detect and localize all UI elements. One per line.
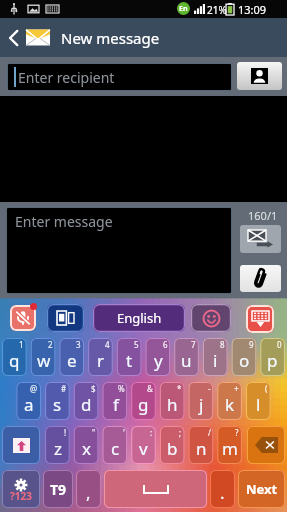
staticText: New message bbox=[61, 28, 160, 48]
button[interactable]: . bbox=[210, 470, 235, 508]
staticText: n bbox=[196, 437, 207, 460]
staticText: & bbox=[147, 383, 153, 394]
staticText: 6 bbox=[163, 339, 168, 350]
staticText: 7 bbox=[191, 339, 196, 350]
button[interactable]: i bbox=[203, 338, 228, 376]
staticText: c bbox=[111, 437, 120, 460]
staticText: - bbox=[208, 383, 211, 394]
staticText: " bbox=[92, 427, 96, 438]
button[interactable]: k bbox=[217, 382, 242, 420]
staticText: j bbox=[199, 393, 204, 416]
button[interactable]: x bbox=[74, 426, 99, 464]
button[interactable]: Space bbox=[104, 470, 207, 508]
button[interactable]: r bbox=[88, 338, 113, 376]
button[interactable]: q bbox=[2, 338, 27, 376]
staticText: # bbox=[61, 383, 67, 394]
button[interactable]: a bbox=[16, 382, 41, 420]
staticText: Next bbox=[246, 480, 278, 498]
button[interactable]: Send bbox=[240, 225, 281, 253]
staticText: o bbox=[239, 349, 250, 372]
staticText: En bbox=[179, 4, 188, 14]
staticText: a bbox=[24, 393, 34, 416]
button[interactable]: y bbox=[146, 338, 171, 376]
staticText: % bbox=[118, 383, 125, 394]
staticText: d bbox=[81, 393, 92, 416]
button[interactable]: T9 bbox=[43, 470, 73, 508]
button[interactable]: j bbox=[189, 382, 214, 420]
button[interactable]: o bbox=[232, 338, 257, 376]
button[interactable]: l bbox=[246, 382, 271, 420]
button[interactable]: Back bbox=[0, 18, 26, 57]
staticText: g bbox=[138, 393, 149, 416]
staticText: , bbox=[86, 481, 91, 504]
staticText: ?123 bbox=[10, 489, 32, 503]
button[interactable]: Emoji bbox=[191, 304, 231, 332]
staticText: 5 bbox=[134, 339, 139, 350]
button[interactable]: z bbox=[45, 426, 70, 464]
staticText: T9 bbox=[50, 480, 67, 499]
staticText: y bbox=[154, 349, 163, 372]
button[interactable]: , bbox=[76, 470, 101, 508]
staticText: 21% bbox=[207, 3, 227, 17]
staticText: 3 bbox=[76, 339, 81, 350]
staticText: q bbox=[9, 349, 20, 372]
button[interactable]: u bbox=[174, 338, 199, 376]
staticText: . bbox=[220, 481, 225, 504]
staticText: k bbox=[225, 393, 235, 416]
staticText: h bbox=[167, 393, 178, 416]
button[interactable]: m bbox=[217, 426, 242, 464]
button[interactable]: Symbols bbox=[2, 470, 40, 508]
staticText: 8 bbox=[220, 339, 225, 350]
staticText: ; bbox=[179, 427, 182, 438]
staticText: : bbox=[150, 427, 153, 438]
button[interactable]: n bbox=[189, 426, 214, 464]
staticText: s bbox=[53, 393, 62, 416]
button[interactable]: b bbox=[160, 426, 185, 464]
staticText: Enter recipient bbox=[18, 68, 115, 87]
staticText: 13:09 bbox=[238, 2, 267, 17]
button[interactable]: g bbox=[131, 382, 156, 420]
button[interactable]: Enter recipient bbox=[8, 64, 231, 90]
button[interactable]: Contacts bbox=[237, 62, 282, 90]
button[interactable]: Clipboard bbox=[47, 304, 84, 332]
button[interactable]: v bbox=[131, 426, 156, 464]
button[interactable]: c bbox=[103, 426, 128, 464]
staticText: 1 bbox=[19, 339, 24, 350]
button[interactable]: w bbox=[31, 338, 56, 376]
staticText: w bbox=[37, 349, 51, 372]
staticText: ' bbox=[123, 427, 125, 438]
button[interactable]: f bbox=[103, 382, 128, 420]
button[interactable]: h bbox=[160, 382, 185, 420]
button[interactable]: p bbox=[260, 338, 285, 376]
button[interactable]: Hide keyboard bbox=[244, 303, 275, 334]
staticText: 0 bbox=[277, 339, 282, 350]
button[interactable]: e bbox=[59, 338, 84, 376]
staticText: t bbox=[126, 349, 133, 372]
button[interactable]: Backspace bbox=[247, 426, 285, 464]
staticText: x bbox=[82, 437, 91, 460]
button[interactable]: English bbox=[93, 304, 185, 332]
staticText: 160/1 bbox=[248, 208, 278, 223]
button[interactable]: d bbox=[74, 382, 99, 420]
button[interactable]: Shift bbox=[2, 426, 40, 464]
staticText: @ bbox=[30, 383, 38, 394]
staticText: z bbox=[54, 437, 62, 460]
staticText: m bbox=[222, 437, 238, 460]
staticText: + bbox=[234, 383, 239, 394]
staticText: Enter message bbox=[15, 212, 113, 231]
staticText: ( bbox=[265, 383, 268, 394]
staticText: v bbox=[139, 437, 148, 460]
button[interactable]: Attach bbox=[240, 265, 281, 292]
button[interactable]: Next bbox=[238, 470, 285, 508]
button[interactable]: s bbox=[45, 382, 70, 420]
staticText: 9 bbox=[249, 339, 254, 350]
button[interactable]: t bbox=[117, 338, 142, 376]
staticText: * bbox=[177, 383, 182, 394]
staticText: / bbox=[208, 427, 211, 438]
button[interactable]: Enter message bbox=[7, 208, 231, 293]
button[interactable]: Voice input bbox=[9, 303, 37, 331]
staticText: English bbox=[117, 309, 162, 327]
staticText: ! bbox=[64, 427, 67, 438]
staticText: b bbox=[167, 437, 178, 460]
staticText: 2 bbox=[48, 339, 53, 350]
